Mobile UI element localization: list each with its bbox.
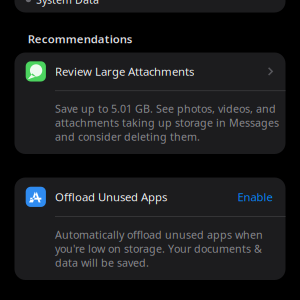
button[interactable]: Enable <box>237 189 272 204</box>
staticText: Offload Unused Apps <box>55 189 167 204</box>
staticText: Save up to 5.01 GB. See photos, videos, … <box>55 101 279 144</box>
staticText: Enable <box>237 189 272 204</box>
staticText: Recommendations <box>28 31 133 46</box>
staticText: System Data <box>36 0 99 7</box>
button[interactable]: Review Large Attachments <box>14 52 285 90</box>
staticText: Automatically offload unused apps when y… <box>55 227 263 270</box>
staticText: Review Large Attachments <box>55 64 194 79</box>
